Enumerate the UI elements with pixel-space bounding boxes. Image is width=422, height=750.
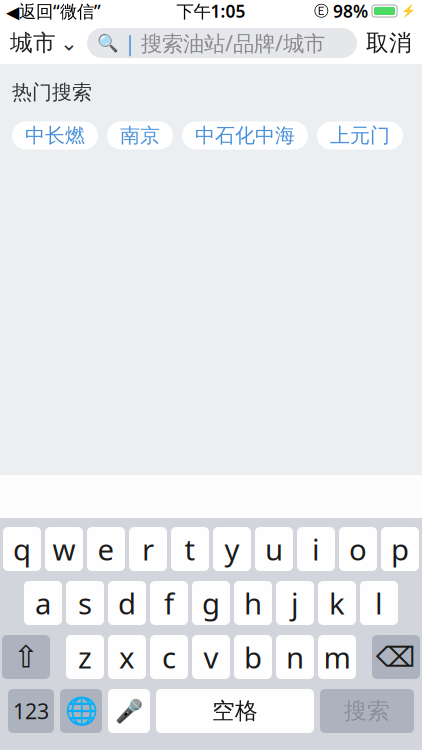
staticText: ⌫ — [376, 641, 416, 673]
staticText: c — [162, 637, 176, 676]
button[interactable]: d — [108, 581, 146, 625]
button[interactable]: w — [45, 527, 83, 571]
staticText: Ⓔ — [314, 2, 329, 20]
staticText: 中长燃 — [25, 123, 85, 148]
staticText: 空格 — [212, 697, 258, 725]
button[interactable]: Dictation — [108, 689, 150, 733]
staticText: m — [323, 637, 350, 676]
button[interactable]: 🔍 — [87, 28, 357, 58]
staticText: ⇧ — [13, 640, 39, 674]
staticText: t — [184, 529, 195, 568]
staticText: x — [119, 637, 135, 676]
staticText: ⌄ — [60, 31, 78, 55]
staticText: 123 — [13, 697, 49, 725]
button[interactable]: j — [276, 581, 314, 625]
staticText: 🔍 — [97, 33, 119, 53]
button[interactable]: c — [150, 635, 188, 679]
button[interactable]: s — [66, 581, 104, 625]
button[interactable]: ◀返回“微信” — [6, 0, 101, 22]
button[interactable]: 城市 — [10, 29, 78, 57]
button[interactable]: y — [213, 527, 251, 571]
button[interactable]: 中石化中海 — [182, 122, 308, 150]
staticText: q — [13, 529, 31, 568]
staticText: d — [118, 583, 136, 622]
staticText: k — [329, 583, 345, 622]
button[interactable]: 中长燃 — [12, 122, 98, 150]
staticText: 🌐 — [64, 696, 97, 726]
staticText: u — [265, 529, 283, 568]
staticText: 下午1:05 — [176, 0, 245, 22]
staticText: 上元门 — [330, 123, 390, 148]
button[interactable]: l — [360, 581, 398, 625]
button[interactable]: Delete — [372, 635, 420, 679]
staticText: y — [224, 529, 239, 568]
button[interactable]: m — [318, 635, 356, 679]
button[interactable]: 123 — [8, 689, 54, 733]
button[interactable]: b — [234, 635, 272, 679]
staticText: r — [142, 529, 154, 568]
staticText: z — [78, 637, 92, 676]
button[interactable]: u — [255, 527, 293, 571]
staticText: 取消 — [366, 29, 412, 57]
button[interactable]: 空格 — [156, 689, 314, 733]
button[interactable]: i — [297, 527, 335, 571]
button[interactable]: g — [192, 581, 230, 625]
staticText: 中石化中海 — [195, 123, 295, 148]
button[interactable]: q — [3, 527, 41, 571]
staticText: i — [312, 529, 320, 568]
button[interactable]: v — [192, 635, 230, 679]
button[interactable]: f — [150, 581, 188, 625]
staticText: 98% — [333, 0, 368, 22]
button[interactable]: x — [108, 635, 146, 679]
button[interactable]: e — [87, 527, 125, 571]
staticText: l — [375, 583, 383, 622]
button[interactable]: 上元门 — [317, 122, 403, 150]
staticText: j — [291, 583, 299, 622]
button[interactable]: h — [234, 581, 272, 625]
staticText: 南京 — [120, 123, 160, 148]
staticText: ⚡ — [401, 4, 416, 18]
button[interactable]: z — [66, 635, 104, 679]
staticText: | — [124, 29, 136, 57]
button[interactable]: k — [318, 581, 356, 625]
staticText: ◀返回“微信” — [6, 0, 101, 22]
staticText: v — [203, 637, 218, 676]
staticText: n — [286, 637, 304, 676]
staticText: 搜索油站/品牌/城市 — [141, 29, 325, 57]
staticText: 城市 — [10, 29, 56, 57]
staticText: h — [244, 583, 262, 622]
button[interactable]: 取消 — [366, 29, 412, 57]
button[interactable]: n — [276, 635, 314, 679]
staticText: s — [78, 583, 92, 622]
staticText: f — [164, 583, 174, 622]
staticText: e — [97, 529, 114, 568]
button[interactable]: o — [339, 527, 377, 571]
button[interactable]: r — [129, 527, 167, 571]
staticText: b — [244, 637, 262, 676]
staticText: 🎤 — [115, 698, 143, 724]
staticText: g — [202, 583, 220, 622]
button[interactable]: p — [381, 527, 419, 571]
button[interactable]: Shift — [2, 635, 50, 679]
button[interactable]: a — [24, 581, 62, 625]
staticText: 热门搜索 — [12, 80, 92, 105]
button[interactable]: 南京 — [107, 122, 173, 150]
staticText: 搜索 — [344, 697, 390, 725]
button[interactable]: 搜索 — [320, 689, 414, 733]
staticText: a — [35, 583, 51, 622]
staticText: p — [391, 529, 409, 568]
staticText: w — [52, 529, 75, 568]
button[interactable]: t — [171, 527, 209, 571]
staticText: o — [349, 529, 367, 568]
button[interactable]: Switch keyboard — [60, 689, 102, 733]
